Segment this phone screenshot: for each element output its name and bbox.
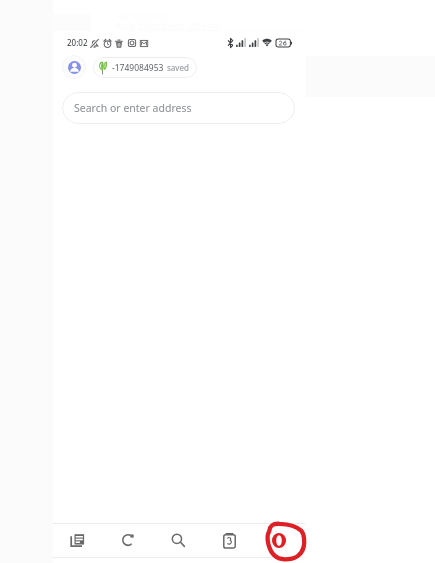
button[interactable]: Opera menu [265,526,293,554]
button[interactable]: Reload page [114,526,142,554]
button[interactable]: -1749084953 [93,57,197,78]
staticText: 20:02 [67,37,88,48]
button[interactable]: News feed [63,526,91,554]
staticText: Search or enter address [74,101,192,115]
button[interactable]: Account [62,55,86,79]
staticText: saved [167,62,189,73]
button[interactable]: Search or enter address [62,92,295,124]
staticText: -1749084953 [112,62,164,74]
button[interactable]: Tabs [215,526,243,554]
button[interactable]: Search [164,526,192,554]
